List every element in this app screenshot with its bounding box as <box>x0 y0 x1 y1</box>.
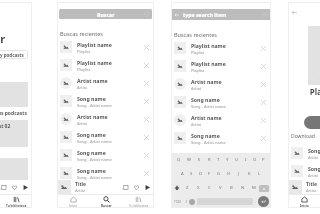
button[interactable]: Seleccionado para <box>0 158 28 182</box>
button[interactable]: B <box>226 181 237 195</box>
staticText: Artist <box>308 173 319 178</box>
staticText: Buscas recientes <box>60 30 103 37</box>
staticText: Artist <box>306 188 317 193</box>
button[interactable]: Podcast 01 Podcast 02 <box>0 120 28 147</box>
button[interactable]: H <box>224 167 234 181</box>
button[interactable]: Artist name <box>174 111 268 129</box>
button[interactable]: Buscar <box>59 9 152 19</box>
button[interactable]: Title <box>288 180 320 194</box>
button[interactable]: Remove <box>259 80 268 89</box>
staticText: Download <box>291 133 315 140</box>
button[interactable]: Song name <box>60 128 151 146</box>
button[interactable]: Enter <box>258 196 269 207</box>
button[interactable]: Remove <box>259 98 268 107</box>
button[interactable]: Like <box>133 184 140 191</box>
staticText: Playlist <box>191 50 205 55</box>
button[interactable]: E <box>194 153 204 167</box>
button[interactable]: Inicio <box>57 195 90 208</box>
button[interactable]: Remove <box>142 61 151 70</box>
button[interactable]: Remove <box>142 115 151 124</box>
button[interactable]: Song name <box>174 129 268 147</box>
button[interactable]: Inicio <box>288 195 320 208</box>
button[interactable]: Back <box>171 9 271 20</box>
button[interactable]: Song name <box>60 164 151 182</box>
button[interactable]: Playlist name <box>174 39 268 57</box>
button[interactable]: K <box>244 167 254 181</box>
button[interactable]: I <box>241 153 250 167</box>
button[interactable]: Song name <box>291 144 320 162</box>
button[interactable]: Remove <box>259 134 268 143</box>
button[interactable]: Musica y podcasts <box>0 50 28 59</box>
button[interactable]: C <box>204 181 215 195</box>
button[interactable]: Shift <box>173 184 181 192</box>
staticText: Playlist name <box>77 41 112 48</box>
button[interactable]: X <box>193 181 204 195</box>
button[interactable]: O <box>250 153 259 167</box>
button[interactable]: R <box>204 153 214 167</box>
button[interactable] <box>304 116 320 129</box>
button[interactable]: Tu biblioteca <box>122 195 154 208</box>
button[interactable]: V <box>215 181 226 195</box>
button[interactable]: Remove <box>259 116 268 125</box>
button[interactable]: L <box>254 167 264 181</box>
button[interactable]: Remove <box>142 133 151 142</box>
button[interactable]: Backspace <box>259 185 269 192</box>
staticText: Song name <box>77 95 106 102</box>
button[interactable]: M <box>248 181 259 195</box>
button[interactable]: Playlist name <box>174 57 268 75</box>
button[interactable]: Artist name <box>60 74 151 92</box>
button[interactable]: Like <box>11 184 18 191</box>
button[interactable]: ?123 <box>173 200 182 204</box>
button[interactable]: Song name <box>174 93 268 111</box>
button[interactable]: Remove <box>142 169 151 178</box>
button[interactable]: Remove <box>142 79 151 88</box>
button[interactable]: U <box>232 153 241 167</box>
button[interactable]: Playlist name <box>60 56 151 74</box>
button[interactable]: S <box>187 167 196 181</box>
button[interactable]: Artist name <box>174 75 268 93</box>
button[interactable]: Tu biblioteca <box>0 195 32 208</box>
button[interactable]: :) <box>182 200 189 204</box>
button[interactable]: Song name <box>291 162 320 180</box>
button[interactable]: W <box>184 153 194 167</box>
button[interactable]: A <box>178 167 187 181</box>
button[interactable]: Remove <box>142 97 151 106</box>
staticText: H <box>227 171 231 177</box>
button[interactable]: Song name <box>60 146 151 164</box>
button[interactable]: T <box>214 153 223 167</box>
staticText: Artist <box>77 121 88 126</box>
button[interactable]: G <box>214 167 224 181</box>
button[interactable]: Back <box>174 12 180 18</box>
button[interactable]: D <box>196 167 205 181</box>
staticText: Artist <box>77 85 88 90</box>
button[interactable]: Back <box>291 9 298 16</box>
button[interactable]: Title <box>0 180 32 194</box>
button[interactable]: F <box>205 167 214 181</box>
button[interactable]: Emoji <box>189 199 195 205</box>
button[interactable]: P <box>259 153 268 167</box>
button[interactable]: Q <box>174 153 184 167</box>
button[interactable]: Cast <box>122 184 129 191</box>
button[interactable]: Playlist name <box>60 38 151 56</box>
button[interactable]: Remove <box>142 43 151 52</box>
button[interactable]: Remove <box>259 62 268 71</box>
button[interactable]: Buscar <box>90 195 122 208</box>
button[interactable]: J <box>234 167 244 181</box>
button[interactable]: Z <box>181 181 193 195</box>
staticText: Song - Artist name <box>77 157 112 162</box>
button[interactable]: Remove <box>142 151 151 160</box>
button[interactable]: N <box>237 181 248 195</box>
staticText: A <box>181 171 184 177</box>
button[interactable]: Cast <box>0 184 7 191</box>
button[interactable]: Song name <box>60 92 151 110</box>
button[interactable]: Remove <box>259 44 268 53</box>
button[interactable]: Artist name <box>60 110 151 128</box>
button[interactable]: Y <box>223 153 232 167</box>
button[interactable]: Title <box>57 180 154 194</box>
button[interactable]: Play <box>144 184 151 191</box>
button[interactable]: Play <box>22 184 29 191</box>
